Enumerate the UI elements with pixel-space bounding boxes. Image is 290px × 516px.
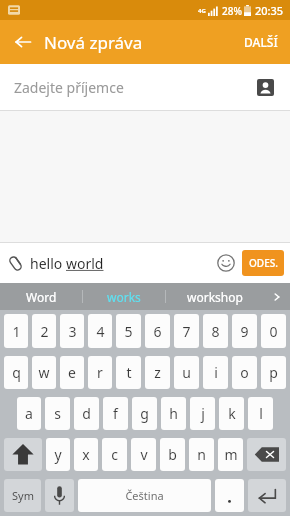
staticText: works xyxy=(107,289,141,305)
staticText: w xyxy=(38,363,50,382)
button[interactable]: t xyxy=(116,356,141,389)
staticText: u xyxy=(182,363,191,382)
button[interactable]: 8 xyxy=(203,314,228,348)
staticText: 20:35 xyxy=(255,3,284,18)
staticText: 0 xyxy=(269,322,278,341)
button[interactable]: e xyxy=(60,356,84,389)
staticText: j xyxy=(201,404,205,423)
button[interactable]: Attach xyxy=(0,248,30,278)
button[interactable]: u xyxy=(174,356,199,389)
button[interactable]: Back xyxy=(6,25,40,59)
button[interactable]: works xyxy=(83,283,165,310)
button[interactable]: Voice input xyxy=(45,479,74,512)
button[interactable]: 4 xyxy=(88,314,112,348)
staticText: Zadejte příjemce xyxy=(14,78,124,97)
button[interactable]: g xyxy=(132,397,157,430)
staticText: Nová zpráva xyxy=(44,31,143,54)
staticText: 1 xyxy=(12,322,21,341)
button[interactable]: ODES. xyxy=(242,250,284,276)
staticText: 5 xyxy=(124,322,133,341)
button[interactable]: d xyxy=(74,397,99,430)
button[interactable]: Word xyxy=(0,283,82,310)
button[interactable]: m xyxy=(218,438,243,471)
staticText: Čeština xyxy=(125,488,164,503)
button[interactable]: l xyxy=(248,397,273,430)
button[interactable]: 6 xyxy=(145,314,170,348)
staticText: DALŠÍ xyxy=(244,34,278,50)
button[interactable]: s xyxy=(45,397,70,430)
staticText: 3 xyxy=(68,322,77,341)
button[interactable]: Emoji xyxy=(210,247,242,279)
button[interactable]: n xyxy=(189,438,214,471)
button[interactable]: i xyxy=(203,356,228,389)
button[interactable]: y xyxy=(46,438,70,471)
button[interactable]: k xyxy=(219,397,244,430)
button[interactable]: w xyxy=(32,356,56,389)
staticText: p xyxy=(269,363,278,382)
button[interactable]: More suggestions xyxy=(264,283,290,310)
button[interactable]: Čeština xyxy=(78,479,211,512)
button[interactable]: x xyxy=(74,438,98,471)
staticText: Word xyxy=(26,289,57,305)
button[interactable]: Shift xyxy=(4,438,42,471)
button[interactable]: o xyxy=(232,356,257,389)
button[interactable]: Enter xyxy=(248,479,286,512)
staticText: e xyxy=(68,363,76,382)
staticText: y xyxy=(54,445,62,464)
staticText: k xyxy=(228,404,236,423)
button[interactable]: r xyxy=(88,356,112,389)
staticText: n xyxy=(197,445,206,464)
staticText: v xyxy=(140,445,148,464)
button[interactable]: workshop xyxy=(166,283,264,310)
staticText: 2 xyxy=(40,322,49,341)
button[interactable]: p xyxy=(261,356,286,389)
staticText: workshop xyxy=(187,289,243,305)
staticText: 28% xyxy=(222,4,242,18)
staticText: i xyxy=(214,363,218,382)
staticText: l xyxy=(259,404,263,423)
staticText: f xyxy=(113,404,118,423)
staticText: world xyxy=(66,254,104,273)
button[interactable]: b xyxy=(160,438,185,471)
button[interactable]: f xyxy=(103,397,128,430)
button[interactable]: Backspace xyxy=(247,438,286,471)
button[interactable]: 3 xyxy=(60,314,84,348)
button[interactable]: Period xyxy=(215,479,244,512)
button[interactable]: 7 xyxy=(174,314,199,348)
button[interactable]: a xyxy=(17,397,41,430)
staticText: c xyxy=(111,445,118,464)
staticText: x xyxy=(82,445,90,464)
button[interactable]: Sym xyxy=(4,479,41,512)
button[interactable]: 1 xyxy=(4,314,28,348)
staticText: t xyxy=(126,363,132,382)
staticText: o xyxy=(240,363,249,382)
button[interactable]: 0 xyxy=(261,314,286,348)
staticText: m xyxy=(224,445,238,464)
button[interactable]: 5 xyxy=(116,314,141,348)
staticText: g xyxy=(140,404,149,423)
button[interactable]: v xyxy=(131,438,156,471)
staticText: 7 xyxy=(182,322,191,341)
button[interactable]: 9 xyxy=(232,314,257,348)
staticText: hello xyxy=(30,254,66,273)
staticText: 4 xyxy=(96,322,105,341)
button[interactable]: Contacts xyxy=(250,72,280,102)
staticText: s xyxy=(54,404,61,423)
button[interactable]: h xyxy=(161,397,186,430)
staticText: r xyxy=(97,363,103,382)
staticText: Sym xyxy=(12,488,34,503)
staticText: h xyxy=(169,404,178,423)
staticText: 9 xyxy=(240,322,249,341)
button[interactable]: z xyxy=(145,356,170,389)
button[interactable]: c xyxy=(102,438,127,471)
staticText: ODES. xyxy=(249,256,278,270)
staticText: 8 xyxy=(211,322,220,341)
button[interactable]: Zadejte příjemce xyxy=(0,64,290,110)
staticText: 4G xyxy=(198,7,206,15)
staticText: d xyxy=(82,404,91,423)
staticText: a xyxy=(25,404,33,423)
button[interactable]: q xyxy=(4,356,28,389)
button[interactable]: j xyxy=(190,397,215,430)
button[interactable]: 2 xyxy=(32,314,56,348)
button[interactable]: DALŠÍ xyxy=(240,30,282,54)
